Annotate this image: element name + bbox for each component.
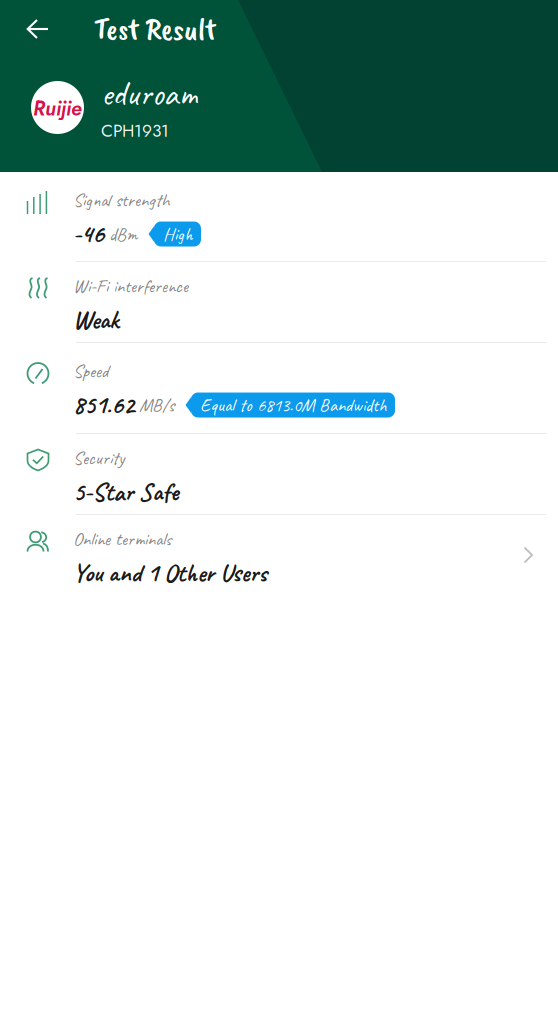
staticText: dBm bbox=[104, 222, 137, 246]
staticText: MB/s bbox=[134, 393, 174, 417]
staticText: High bbox=[163, 222, 192, 246]
staticText: Ruijie bbox=[33, 94, 82, 123]
staticText: Speed bbox=[73, 359, 108, 383]
button[interactable]: Back bbox=[0, 11, 56, 47]
staticText: 851.62 bbox=[73, 389, 134, 421]
staticText: Security bbox=[73, 446, 124, 470]
staticText: Weak bbox=[73, 304, 118, 336]
staticText: Signal strength bbox=[73, 188, 170, 212]
button[interactable]: Online terminals bbox=[0, 515, 558, 596]
staticText: Online terminals bbox=[73, 527, 171, 551]
staticText: 5-Star Safe bbox=[73, 476, 178, 508]
staticText: eduroam bbox=[101, 72, 197, 115]
staticText: Wi-Fi interference bbox=[73, 274, 188, 298]
staticText: You and 1 Other Users bbox=[73, 557, 267, 589]
staticText: -46 bbox=[73, 218, 104, 250]
staticText: Equal to 6813.0M Bandwidth bbox=[200, 393, 386, 417]
staticText: CPH1931 bbox=[101, 118, 169, 143]
staticText: Test Result bbox=[94, 10, 216, 48]
